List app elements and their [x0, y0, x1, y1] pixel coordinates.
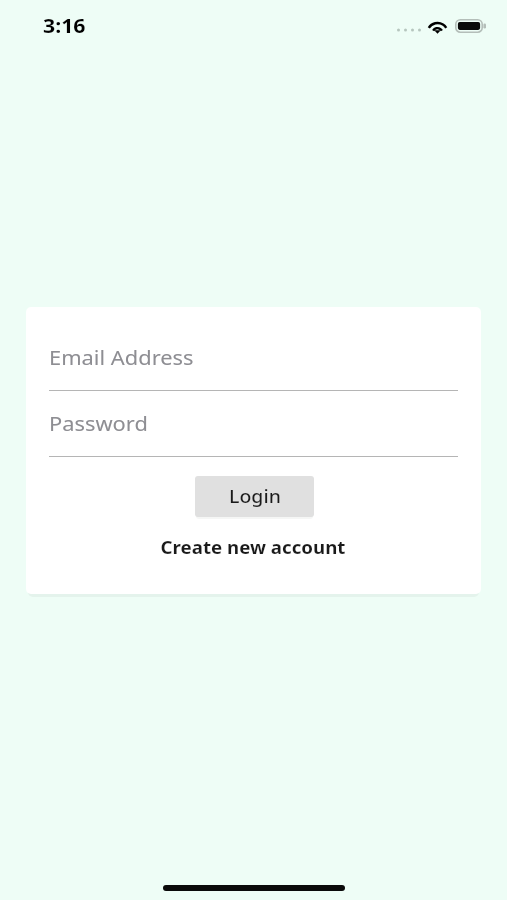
staticText: Create new account: [160, 536, 346, 559]
button[interactable]: Create new account: [163, 530, 344, 564]
other: Cellular signal: [397, 27, 421, 33]
staticText: Email Address: [49, 345, 194, 371]
other: Wi-Fi: [427, 19, 448, 33]
button[interactable]: Login: [195, 476, 314, 517]
staticText: Password: [49, 411, 148, 437]
other: Battery: [455, 19, 487, 33]
staticText: 3:16: [43, 13, 86, 39]
button[interactable]: Email Address: [49, 335, 458, 393]
staticText: Login: [229, 484, 281, 509]
button[interactable]: Password: [49, 401, 458, 459]
